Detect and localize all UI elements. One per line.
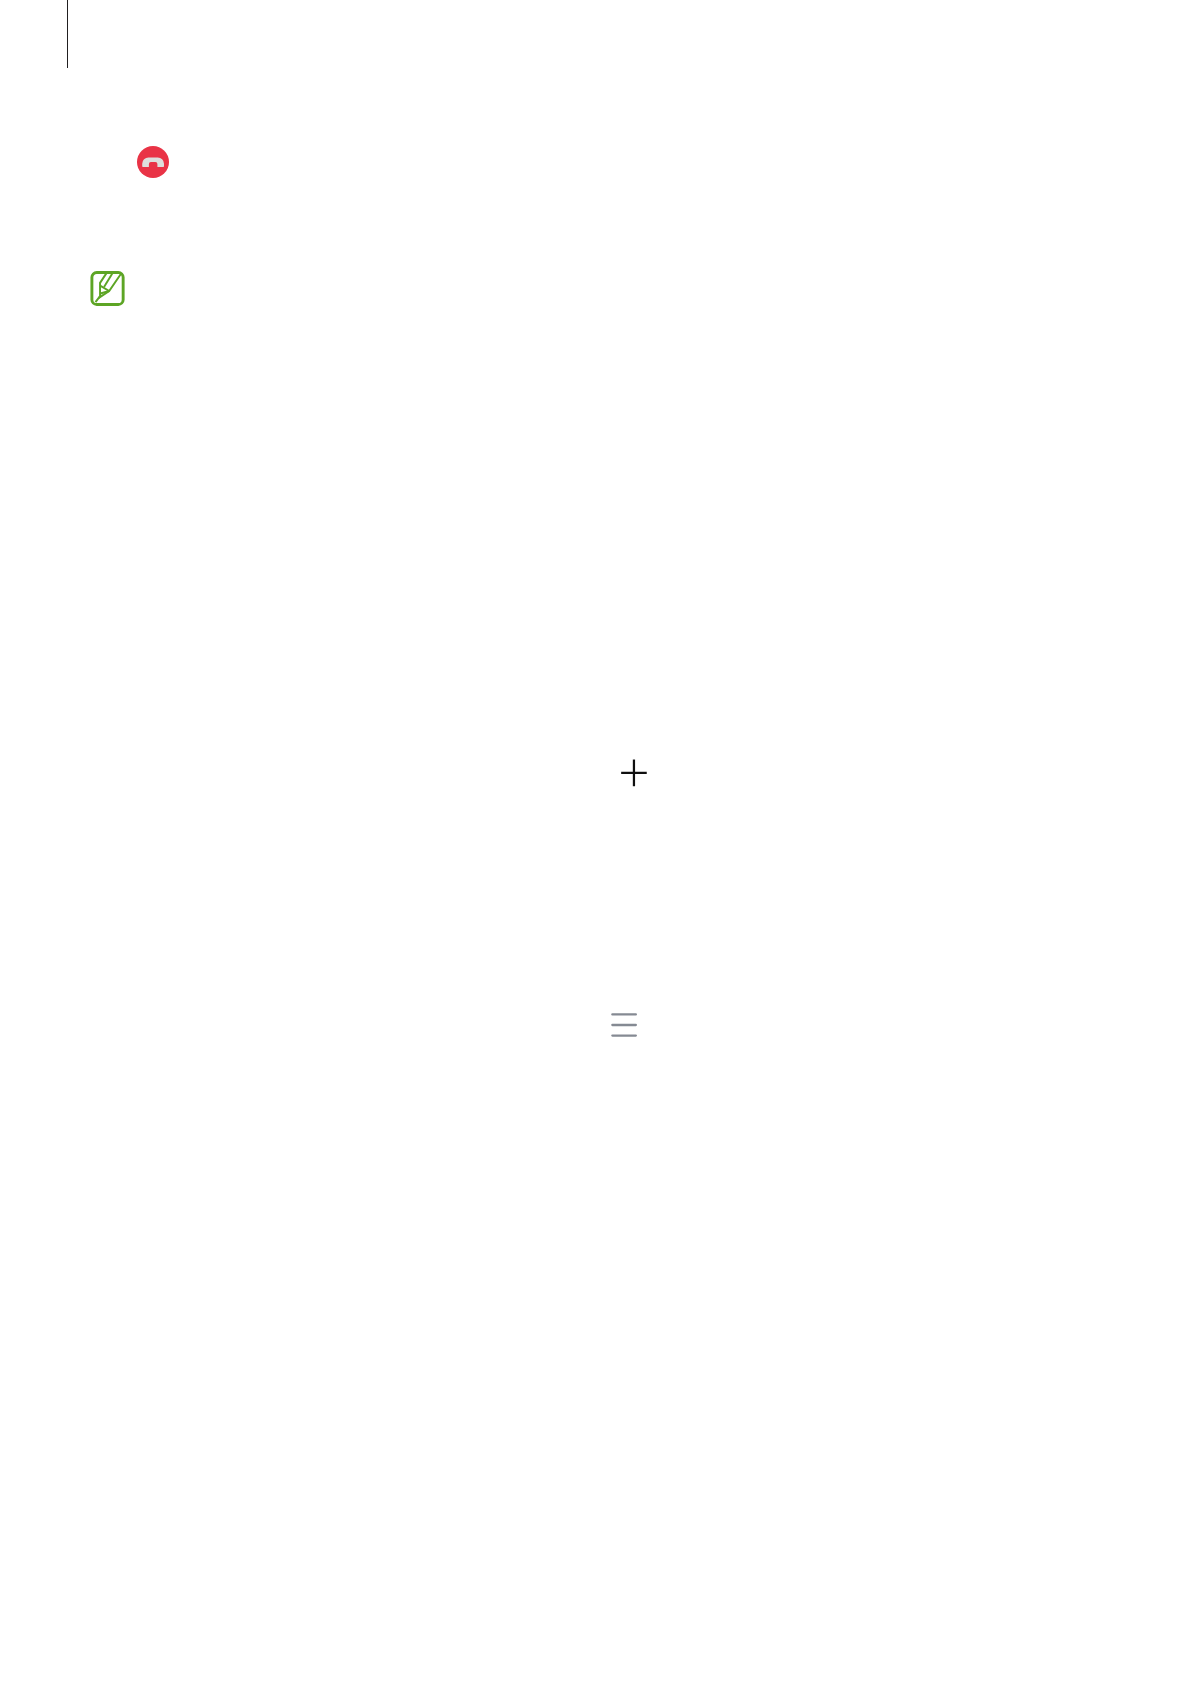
button[interactable]: Add xyxy=(618,757,650,789)
button[interactable]: End call xyxy=(137,146,169,178)
button[interactable]: Menu xyxy=(608,1008,640,1040)
button[interactable]: Samsung Notes xyxy=(90,270,126,307)
